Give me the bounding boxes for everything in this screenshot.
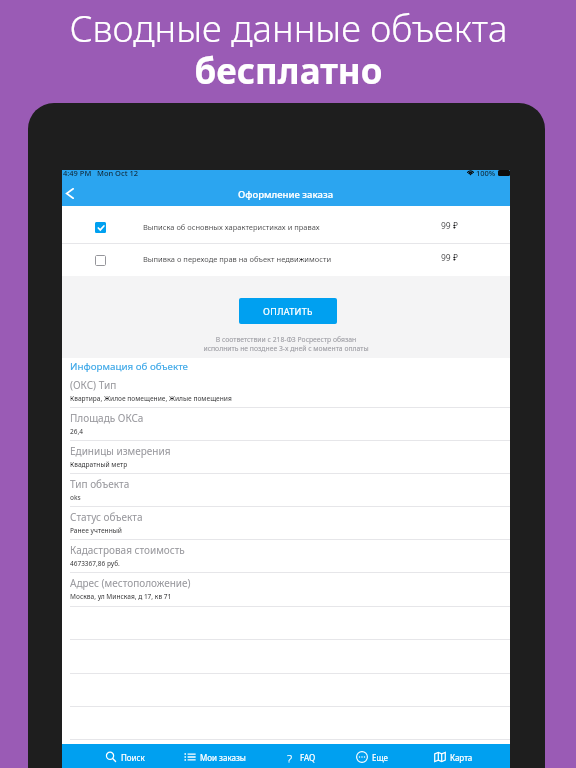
button[interactable]: Мои заказы <box>173 745 257 768</box>
staticText: ОПЛАТИТЬ <box>263 305 313 317</box>
staticText: Площадь ОКСа <box>70 411 144 425</box>
button[interactable]: ? <box>258 745 342 768</box>
button[interactable]: Кадастровая стоимость <box>70 540 510 572</box>
staticText: Кадастровая стоимость <box>70 543 185 557</box>
staticText: FAQ <box>300 752 316 763</box>
staticText: 99 ₽ <box>441 220 458 232</box>
staticText: Квартира, Жилое помещение, Жилые помещен… <box>70 394 232 403</box>
button[interactable]: Not selected <box>62 244 510 276</box>
staticText: 100% <box>476 168 496 178</box>
staticText: Москва, ул Минская, д 17, кв 71 <box>70 592 172 601</box>
staticText: Выписка об основных характеристиках и пр… <box>143 222 320 232</box>
staticText: ? <box>287 751 293 763</box>
staticText: Поиск <box>121 752 145 763</box>
staticText: Адрес (местоположение) <box>70 576 191 590</box>
staticText: Выпивка о переходе прав на объект недвиж… <box>143 254 332 264</box>
button[interactable]: Selected <box>62 206 510 243</box>
staticText: Еще <box>372 752 389 763</box>
button[interactable]: Back <box>62 186 76 200</box>
button[interactable]: Площадь ОКСа <box>70 408 510 440</box>
staticText: Статус объекта <box>70 510 143 524</box>
button[interactable]: Selected <box>95 222 106 233</box>
button[interactable]: Поиск <box>83 745 167 768</box>
staticText: Карта <box>450 752 473 763</box>
staticText: Квадратный метр <box>70 460 128 469</box>
staticText: (ОКС) Тип <box>70 378 117 392</box>
staticText: Единицы измерения <box>70 444 171 458</box>
staticText: Mon Oct 12 <box>97 168 139 178</box>
staticText: Ранее учтенный <box>70 526 122 535</box>
staticText: В соответствии с 218-ФЗ Росреестр обязан… <box>203 335 369 353</box>
staticText: Сводные данные объекта <box>69 3 508 53</box>
staticText: 4673367,86 руб. <box>70 559 120 568</box>
staticText: бесплатно <box>194 47 383 95</box>
button[interactable]: Адрес (местоположение) <box>70 573 510 606</box>
button[interactable]: Тип объекта <box>70 474 510 506</box>
staticText: Оформление заказа <box>238 188 334 201</box>
button[interactable]: Карта <box>411 745 495 768</box>
staticText: Тип объекта <box>70 477 130 491</box>
button[interactable]: ОПЛАТИТЬ <box>239 298 337 324</box>
button[interactable]: Not selected <box>95 255 106 266</box>
staticText: Мои заказы <box>200 752 246 763</box>
staticText: 99 ₽ <box>441 252 458 264</box>
button[interactable]: Еще <box>330 745 414 768</box>
staticText: 4:49 PM <box>63 168 92 178</box>
button[interactable]: (ОКС) Тип <box>70 375 510 407</box>
staticText: 26,4 <box>70 427 83 436</box>
staticText: oks <box>70 493 81 502</box>
button[interactable]: Статус объекта <box>70 507 510 539</box>
button[interactable]: Единицы измерения <box>70 441 510 473</box>
staticText: Информация об объекте <box>70 360 189 373</box>
